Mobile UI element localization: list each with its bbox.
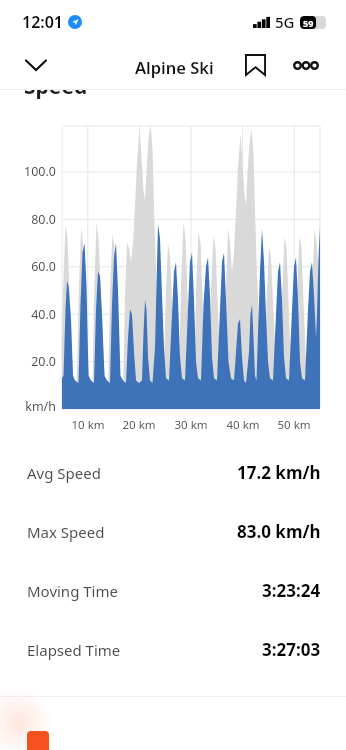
button[interactable]: Bookmark: [235, 45, 275, 85]
staticText: Max Speed: [27, 522, 105, 542]
staticText: 80.0: [0, 211, 56, 228]
staticText: 12:01: [22, 11, 64, 33]
staticText: 10 km: [63, 417, 113, 433]
staticText: Avg Speed: [27, 463, 101, 483]
staticText: 60.0: [0, 258, 56, 275]
staticText: 17.2 km/h: [237, 461, 321, 484]
staticText: Elapsed Time: [27, 640, 121, 660]
staticText: Speed: [24, 72, 88, 101]
staticText: Moving Time: [27, 581, 118, 601]
staticText: 3:27:03: [262, 638, 321, 661]
staticText: 20 km: [114, 417, 164, 433]
staticText: Alpine Ski: [135, 56, 214, 78]
staticText: 40 km: [218, 417, 268, 433]
button[interactable]: Record activity: [27, 731, 49, 750]
staticText: 50 km: [269, 417, 319, 433]
button[interactable]: Elapsed Time: [0, 620, 346, 679]
staticText: 40.0: [0, 306, 56, 323]
staticText: 59: [303, 17, 314, 29]
button[interactable]: Max Speed: [0, 502, 346, 561]
staticText: km/h: [0, 398, 56, 415]
staticText: 100.0: [0, 163, 56, 180]
staticText: 20.0: [0, 353, 56, 370]
staticText: 5G: [275, 12, 295, 32]
button[interactable]: Avg Speed: [0, 443, 346, 502]
button[interactable]: More options: [286, 45, 326, 85]
staticText: 3:23:24: [262, 579, 321, 602]
staticText: 83.0 km/h: [237, 520, 321, 543]
button[interactable]: Collapse: [16, 45, 56, 85]
staticText: 30 km: [166, 417, 216, 433]
button[interactable]: Moving Time: [0, 561, 346, 620]
